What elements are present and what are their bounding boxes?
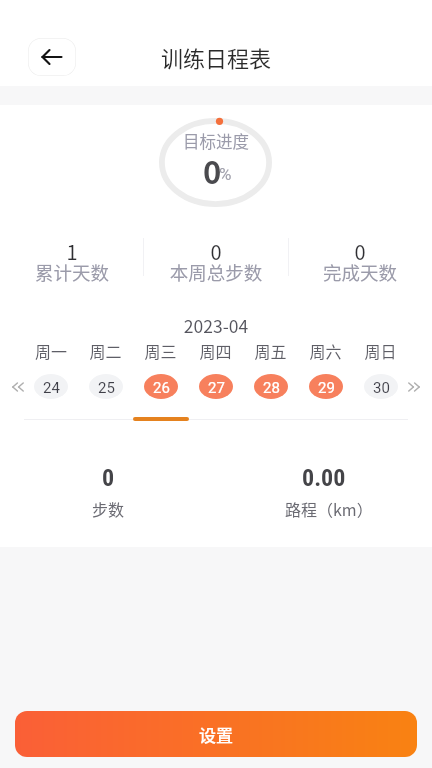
staticText: % [219,164,232,184]
button[interactable]: 0 [288,237,432,281]
staticText: 0 [203,148,222,193]
staticText: 28 [263,379,280,397]
staticText: 25 [98,379,115,397]
staticText: 周二 [78,339,133,362]
staticText: 设置 [199,722,233,747]
staticText: 路程（km） [285,497,373,520]
button[interactable]: 0 [144,237,288,281]
button[interactable]: Next week [402,374,426,399]
button[interactable]: Back [28,38,76,76]
staticText: 本周总步数 [144,259,288,286]
staticText: 1 [0,237,144,266]
button[interactable]: 26 [144,374,178,399]
staticText: 完成天数 [288,259,432,286]
button[interactable]: Previous week [6,374,30,399]
staticText: 2023-04 [0,313,432,338]
staticText: 周五 [243,339,298,362]
button[interactable]: 24 [34,374,68,399]
button[interactable]: 1 [0,237,144,281]
staticText: 周日 [353,339,408,362]
staticText: 26 [153,379,170,397]
button[interactable]: 25 [89,374,123,399]
staticText: 0 [288,237,432,266]
staticText: 0 [144,237,288,266]
staticText: 周一 [24,339,78,362]
staticText: 0 [102,464,115,492]
staticText: 目标进度 [0,129,432,153]
button[interactable]: 设置 [15,711,417,757]
button[interactable]: 30 [364,374,398,399]
staticText: 累计天数 [0,259,144,286]
staticText: 27 [208,379,225,397]
staticText: 0.00 [302,464,346,492]
button[interactable]: 28 [254,374,288,399]
staticText: 周六 [298,339,353,362]
staticText: 步数 [92,497,125,520]
button[interactable]: 29 [309,374,343,399]
staticText: 29 [318,379,335,397]
staticText: 30 [373,379,390,397]
staticText: 周四 [188,339,243,362]
staticText: 训练日程表 [161,41,272,73]
button[interactable]: 27 [199,374,233,399]
button[interactable]: 0.00 [216,464,432,520]
staticText: 周三 [133,339,188,362]
button[interactable]: 0 [0,464,216,520]
staticText: 24 [43,379,60,397]
